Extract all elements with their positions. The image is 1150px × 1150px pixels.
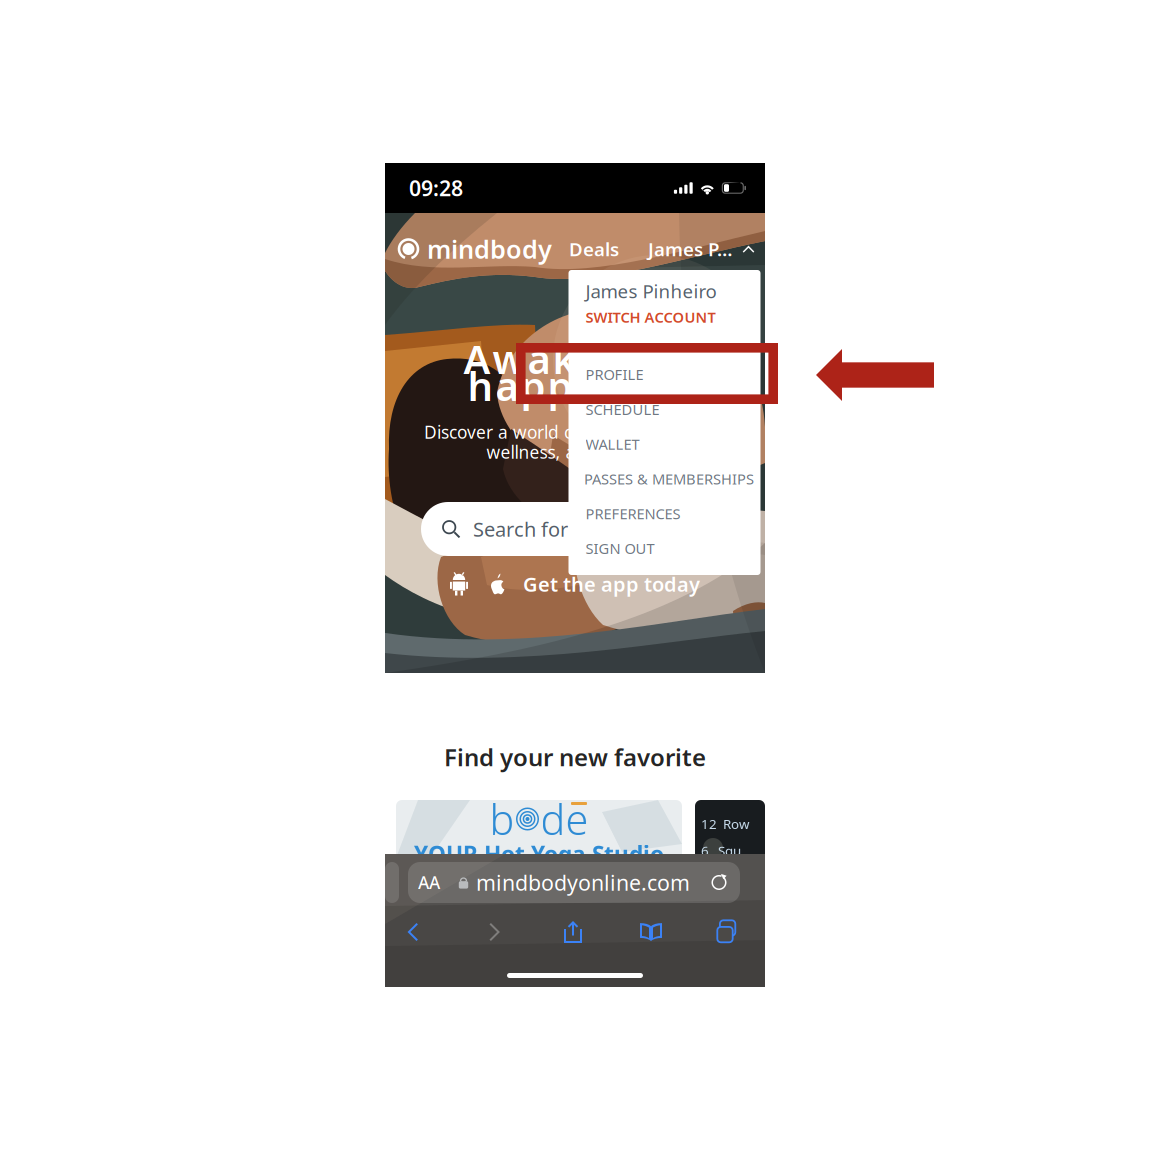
button[interactable]: Get the app today	[523, 571, 700, 597]
button[interactable]: Deals	[569, 237, 619, 261]
button[interactable]: SIGN OUT	[568, 531, 760, 566]
button[interactable]: mindbody home	[397, 232, 552, 266]
staticText: SCHEDULE	[585, 399, 659, 419]
button[interactable]: Bookmarks	[626, 916, 676, 948]
button[interactable]: WALLET	[568, 427, 760, 461]
staticText: AA	[418, 871, 440, 894]
staticText: Find your new favorite	[444, 741, 706, 773]
staticText: PASSES & MEMBERSHIPS	[584, 469, 754, 489]
staticText: James P…	[648, 237, 733, 261]
staticText: Get the app today	[523, 571, 700, 597]
staticText: WALLET	[585, 434, 639, 454]
staticText: happiness	[467, 359, 682, 412]
button[interactable]: PREFERENCES	[568, 496, 760, 531]
button[interactable]: Share	[548, 916, 598, 948]
staticText: 09:28	[409, 174, 463, 202]
staticText: Discover a world of in-person fitness,	[424, 420, 726, 443]
staticText: SIGN OUT	[585, 539, 654, 558]
staticText: PROFILE	[585, 365, 643, 384]
staticText: James Pinheiro	[585, 279, 716, 303]
button[interactable]: SWITCH ACCOUNT	[568, 304, 760, 330]
staticText: de	[540, 792, 588, 846]
button[interactable]: Forward	[470, 916, 520, 948]
button[interactable]: Tabs	[704, 916, 754, 948]
staticText: YOUR Hot Yoga Studio	[414, 839, 664, 869]
staticText: Awaken to	[463, 332, 686, 385]
button[interactable]: James Pinheiro	[568, 278, 760, 304]
button[interactable]: James P…	[648, 237, 755, 261]
button[interactable]: PASSES & MEMBERSHIPS	[568, 461, 760, 496]
staticText: Search for anything	[473, 516, 654, 542]
staticText: PREFERENCES	[585, 504, 680, 523]
button[interactable]: AA	[408, 862, 740, 903]
staticText: b	[489, 792, 514, 846]
button[interactable]: Search for anything	[421, 502, 729, 556]
staticText: mindbodyonline.com	[476, 868, 690, 897]
button[interactable]: Back	[388, 916, 438, 948]
button[interactable]: PROFILE	[568, 357, 760, 392]
staticText: wellness, and beauty.	[486, 440, 663, 463]
staticText: 12 Row	[701, 815, 749, 833]
staticText: 6 Squ	[701, 842, 741, 859]
staticText: Deals	[569, 237, 619, 261]
button[interactable]: Get it on Google Play	[450, 572, 468, 595]
staticText: SWITCH ACCOUNT	[585, 307, 715, 327]
staticText: mindbody	[427, 232, 552, 266]
button[interactable]: SCHEDULE	[568, 392, 760, 427]
staticText: 12 Cur	[701, 868, 745, 886]
button[interactable]: Download on the App Store	[489, 573, 506, 594]
